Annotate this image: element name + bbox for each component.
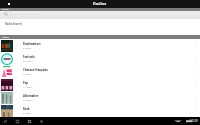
- staticText: Pop: [23, 81, 28, 85]
- button[interactable]: Menu: [38, 118, 44, 124]
- staticText: Alternative: [23, 94, 39, 98]
- staticText: Festivals: [23, 55, 35, 59]
- button[interactable]: Festivals: [0, 52, 200, 65]
- staticText: Radios: [93, 1, 107, 7]
- staticText: Radios: [2, 8, 9, 11]
- staticText: Rock: [23, 107, 30, 111]
- button[interactable]: Chanson Française: [0, 65, 200, 78]
- button[interactable]: Search for a radio station: [0, 11, 200, 19]
- staticText: 4 radios: [23, 73, 32, 76]
- button[interactable]: Rock: [0, 104, 200, 117]
- button[interactable]: Flashmatters: [0, 39, 200, 52]
- button[interactable]: Back: [2, 118, 8, 124]
- staticText: 23 radios: [23, 60, 33, 63]
- staticText: 17 radios: [23, 99, 33, 102]
- staticText: Flashmatters: [23, 42, 41, 46]
- staticText: Radio Search: [5, 22, 22, 26]
- staticText: 11 radios: [23, 86, 33, 89]
- staticText: Chanson Française: [23, 68, 48, 72]
- button[interactable]: Pop: [0, 78, 200, 91]
- button[interactable]: Home: [14, 118, 20, 124]
- staticText: 8 radios: [23, 112, 32, 115]
- button[interactable]: Radios: [0, 35, 200, 39]
- button[interactable]: Radios: [0, 8, 200, 11]
- staticText: Search for a radio station: [10, 13, 35, 16]
- button[interactable]: Alternative: [0, 91, 200, 104]
- staticText: 12:30: [190, 119, 198, 123]
- button[interactable]: Recent apps: [26, 118, 32, 124]
- staticText: Radios: [2, 36, 10, 39]
- staticText: 9 radios: [23, 47, 32, 50]
